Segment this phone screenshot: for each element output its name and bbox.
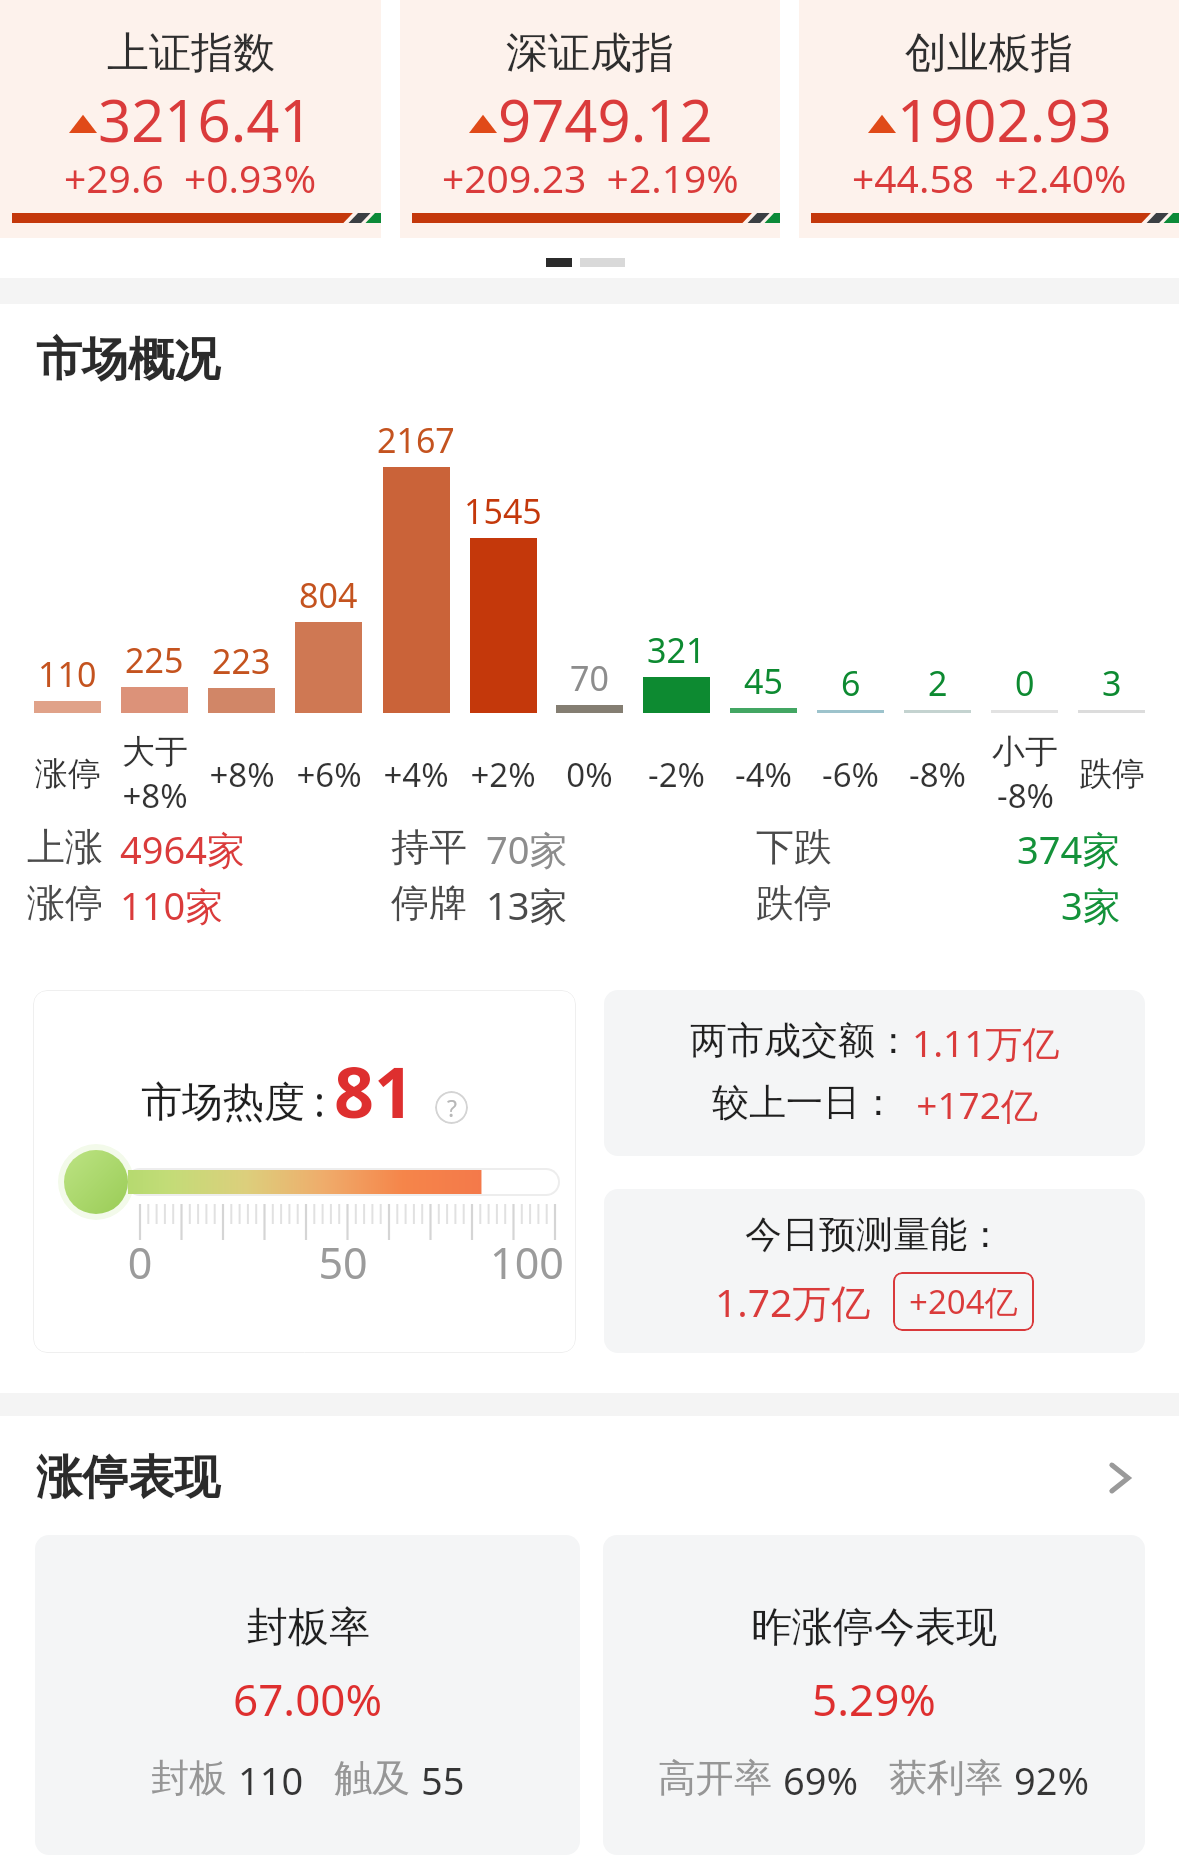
staticText: 6 bbox=[841, 660, 861, 706]
staticText: +204亿 bbox=[909, 1279, 1018, 1324]
staticText: 上涨 bbox=[27, 823, 103, 871]
staticText: 70 bbox=[570, 655, 609, 701]
staticText: 321 bbox=[647, 627, 706, 673]
staticText: +8% bbox=[209, 752, 275, 797]
staticText: -4% bbox=[735, 752, 792, 797]
staticText: +8% bbox=[122, 773, 188, 818]
staticText: 2167 bbox=[377, 417, 455, 463]
staticText: 高开率 bbox=[658, 1754, 772, 1802]
button[interactable]: 两市成交额： bbox=[604, 990, 1145, 1156]
staticText: 两市成交额： bbox=[690, 1017, 912, 1064]
staticText: 昨涨停今表现 bbox=[751, 1602, 997, 1654]
staticText: 跌停 bbox=[756, 879, 832, 927]
staticText: 0 bbox=[100, 1233, 180, 1292]
staticText: ? bbox=[447, 1092, 457, 1123]
staticText: -8% bbox=[997, 773, 1054, 818]
button[interactable]: 创业板指 bbox=[799, 0, 1179, 238]
staticText: 45 bbox=[744, 658, 783, 704]
staticText: 81 bbox=[334, 1043, 415, 1138]
staticText: 110 bbox=[38, 651, 97, 697]
staticText: 下跌 bbox=[756, 823, 832, 871]
button[interactable]: Market heat help bbox=[435, 1091, 468, 1124]
staticText: 223 bbox=[212, 638, 271, 684]
staticText: 5.29% bbox=[812, 1669, 936, 1729]
staticText: 封板 bbox=[151, 1754, 227, 1802]
staticText: 1902.93 bbox=[897, 80, 1112, 159]
staticText: 2 bbox=[928, 660, 948, 706]
staticText: 市场概况 bbox=[36, 331, 220, 389]
staticText: 4964家 bbox=[120, 823, 245, 875]
staticText: 深证成指 bbox=[506, 27, 674, 80]
staticText: 今日预测量能： bbox=[745, 1211, 1004, 1258]
staticText: 804 bbox=[299, 572, 358, 618]
other: More limit up performance bbox=[1103, 1461, 1137, 1495]
staticText: 大于 bbox=[122, 731, 188, 773]
staticText: +29.6 +0.93% bbox=[64, 151, 317, 204]
staticText: +6% bbox=[296, 752, 362, 797]
staticText: 69% bbox=[783, 1754, 859, 1806]
staticText: 100 bbox=[487, 1233, 567, 1292]
button[interactable]: 上证指数 bbox=[0, 0, 381, 238]
staticText: 13家 bbox=[486, 879, 568, 931]
staticText: -8% bbox=[909, 752, 966, 797]
staticText: 小于 bbox=[992, 731, 1058, 773]
staticText: +4% bbox=[383, 752, 449, 797]
button[interactable]: 深证成指 bbox=[400, 0, 780, 238]
staticText: 110家 bbox=[120, 879, 224, 931]
staticText: 1545 bbox=[464, 488, 542, 534]
staticText: 67.00% bbox=[233, 1669, 383, 1729]
staticText: -2% bbox=[648, 752, 705, 797]
staticText: 市场热度 bbox=[141, 1077, 305, 1129]
staticText: 持平 bbox=[391, 823, 467, 871]
staticText: 跌停 bbox=[1079, 753, 1145, 795]
staticText: 70家 bbox=[486, 823, 568, 875]
staticText: 1.72万亿 bbox=[715, 1275, 871, 1328]
button[interactable]: 市场热度 bbox=[33, 990, 576, 1353]
staticText: 0 bbox=[1015, 660, 1035, 706]
staticText: 3家 bbox=[1061, 879, 1121, 931]
staticText: 3216.41 bbox=[98, 80, 313, 159]
staticText: 触及 bbox=[334, 1754, 410, 1802]
staticText: : bbox=[314, 1073, 325, 1129]
staticText: 封板率 bbox=[247, 1602, 370, 1654]
button[interactable]: 涨停表现 bbox=[36, 1449, 1137, 1507]
staticText: 上证指数 bbox=[107, 27, 275, 80]
staticText: 1.11万亿 bbox=[912, 1017, 1060, 1068]
staticText: 3 bbox=[1102, 660, 1122, 706]
staticText: +209.23 +2.19% bbox=[442, 151, 739, 204]
staticText: 92% bbox=[1014, 1754, 1090, 1806]
staticText: 110 bbox=[238, 1754, 304, 1806]
button[interactable]: 今日预测量能： bbox=[604, 1189, 1145, 1353]
staticText: 55 bbox=[421, 1754, 465, 1806]
staticText: 停牌 bbox=[391, 879, 467, 927]
staticText: -6% bbox=[822, 752, 879, 797]
staticText: 创业板指 bbox=[905, 27, 1073, 80]
staticText: 获利率 bbox=[889, 1754, 1003, 1802]
staticText: 涨停表现 bbox=[36, 1449, 220, 1507]
staticText: +172亿 bbox=[897, 1079, 1038, 1130]
staticText: +44.58 +2.40% bbox=[852, 151, 1127, 204]
staticText: 9749.12 bbox=[498, 80, 713, 159]
staticText: 374家 bbox=[1017, 823, 1121, 875]
staticText: 0% bbox=[566, 752, 613, 797]
staticText: 较上一日： bbox=[712, 1079, 897, 1126]
staticText: +2% bbox=[470, 752, 536, 797]
staticText: 50 bbox=[303, 1233, 383, 1292]
button[interactable]: 封板率 bbox=[35, 1535, 580, 1855]
button[interactable]: 昨涨停今表现 bbox=[603, 1535, 1145, 1855]
staticText: 涨停 bbox=[27, 879, 103, 927]
staticText: 225 bbox=[125, 637, 184, 683]
staticText: 涨停 bbox=[35, 753, 101, 795]
